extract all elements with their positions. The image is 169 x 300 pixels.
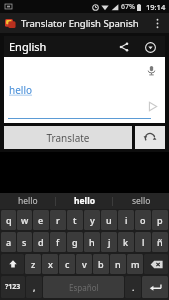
button[interactable]: Translate [4,126,132,149]
button[interactable]: Español [43,276,124,298]
button[interactable]: a [1,232,16,252]
staticText: Translator English Spanish [21,17,139,30]
button[interactable]: Voice input [143,62,159,78]
button[interactable]: u [101,210,117,230]
staticText: b [98,258,104,270]
staticText: l [142,236,145,248]
staticText: . [132,281,135,293]
button[interactable]: h [84,232,100,252]
button[interactable]: hello [56,193,112,209]
staticText: z [31,258,36,270]
button[interactable]: e [33,210,49,230]
button[interactable]: ñ [152,232,168,252]
staticText: o [140,214,146,226]
button[interactable]: Swap languages [135,126,165,149]
button[interactable]: k [118,232,134,252]
staticText: h [89,236,95,248]
button[interactable]: v [76,254,92,274]
staticText: hello [74,195,95,207]
button[interactable]: x [42,254,58,274]
staticText: f [56,236,60,248]
button[interactable]: b [93,254,109,274]
staticText: Español [69,282,99,293]
staticText: w [21,214,29,226]
staticText: c [65,258,70,270]
button[interactable]: Period [125,276,141,298]
button[interactable]: j [101,232,117,252]
staticText: d [38,236,44,248]
staticText: e [38,214,44,226]
staticText: , [33,281,36,293]
button[interactable]: Select language [140,37,160,57]
button[interactable]: p [152,210,168,230]
staticText: k [123,236,129,248]
staticText: p [157,214,163,226]
button[interactable]: n [110,254,126,274]
button[interactable]: m [127,254,143,274]
staticText: u [106,214,112,226]
button[interactable]: d [33,232,49,252]
button[interactable]: Comma [26,276,42,298]
staticText: n [115,258,121,270]
button[interactable]: r [50,210,66,230]
button[interactable]: hello [0,193,55,209]
button[interactable]: t [67,210,83,230]
staticText: s [22,236,27,248]
button[interactable]: Listen [145,99,159,113]
button[interactable]: q [1,210,16,230]
staticText: hello [18,195,38,207]
button[interactable]: c [59,254,75,274]
staticText: a [6,236,12,248]
staticText: m [131,258,140,270]
button[interactable]: Shift [1,254,24,274]
staticText: r [56,214,60,226]
button[interactable]: s [17,232,32,252]
button[interactable]: g [67,232,83,252]
staticText: ñ [157,236,163,248]
button[interactable]: w [17,210,32,230]
staticText: g [72,236,78,248]
button[interactable]: l [135,232,151,252]
staticText: x [48,258,53,270]
staticText: 67% [121,2,135,12]
staticText: English [9,39,47,54]
button[interactable]: ?123 [1,276,25,298]
staticText: Translate [46,131,90,145]
staticText: hello [9,83,33,97]
button[interactable]: i [118,210,134,230]
button[interactable]: Share [114,37,134,57]
button[interactable]: z [25,254,41,274]
button[interactable]: More options [150,13,164,33]
staticText: t [73,214,77,226]
staticText: ?123 [5,282,21,292]
staticText: i [125,214,128,226]
staticText: 19:14 [146,2,166,12]
staticText: v [82,258,87,270]
button[interactable]: y [84,210,100,230]
button[interactable]: sello [113,193,169,209]
button[interactable]: f [50,232,66,252]
button[interactable]: o [135,210,151,230]
staticText: y [90,214,95,226]
button[interactable]: Enter [142,276,168,298]
button[interactable]: Backspace [144,254,168,274]
staticText: j [108,236,111,248]
staticText: sello [132,195,151,207]
staticText: q [6,214,12,226]
